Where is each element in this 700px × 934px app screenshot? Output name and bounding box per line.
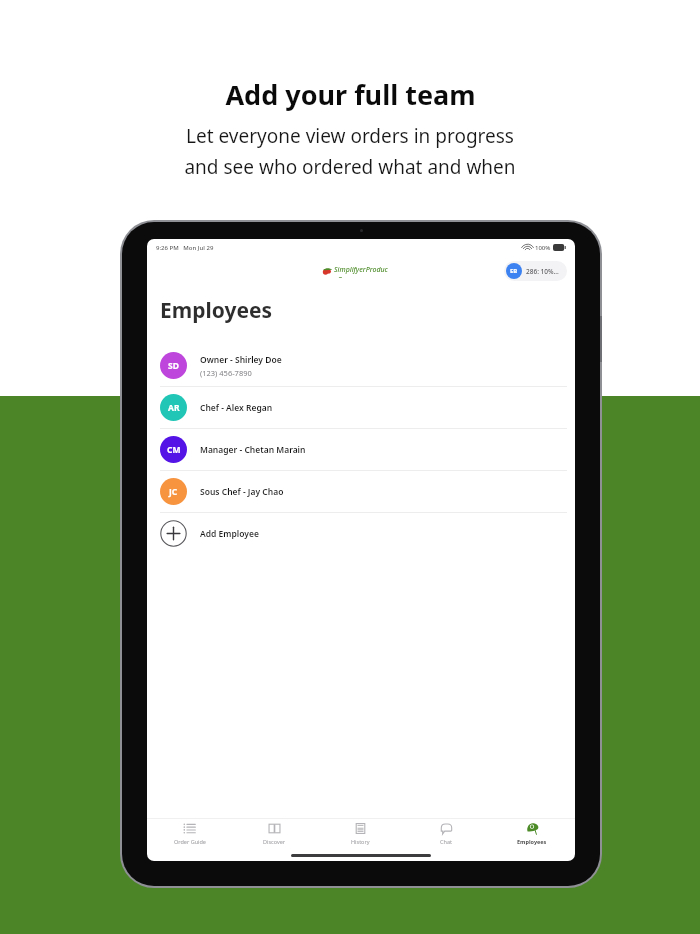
staticText: AR xyxy=(168,402,180,414)
button[interactable]: EB xyxy=(504,261,567,281)
staticText: (123) 456-7890 xyxy=(200,368,252,378)
staticText: 9:26 PM Mon Jul 29 xyxy=(156,244,214,252)
staticText: EB xyxy=(510,267,518,275)
staticText: Employees xyxy=(517,838,547,845)
staticText: Add Employee xyxy=(200,528,259,540)
staticText: SD xyxy=(168,360,179,372)
button[interactable]: History xyxy=(317,819,403,852)
button[interactable]: SD xyxy=(147,345,575,386)
button[interactable]: CM xyxy=(147,429,575,470)
button[interactable]: Order Guide xyxy=(147,819,232,852)
staticText: History xyxy=(351,838,370,845)
staticText: CM xyxy=(167,444,181,456)
other: Employees xyxy=(526,822,539,835)
staticText: Add your full team xyxy=(225,76,476,113)
button[interactable]: JC xyxy=(147,471,575,512)
button[interactable]: Chat xyxy=(403,819,489,852)
staticText: Let everyone view orders in progress xyxy=(186,123,514,149)
staticText: Employees xyxy=(160,296,273,325)
staticText: Chat xyxy=(440,838,452,845)
button[interactable]: AR xyxy=(147,387,575,428)
button[interactable]: Add Employee xyxy=(147,513,575,554)
staticText: Manager - Chetan Marain xyxy=(200,444,306,456)
staticText: 286: 10%... xyxy=(526,267,559,276)
staticText: Sous Chef - Jay Chao xyxy=(200,486,284,498)
staticText: Chef - Alex Regan xyxy=(200,402,273,414)
staticText: and see who ordered what and when xyxy=(184,154,516,180)
button[interactable]: Discover xyxy=(232,819,317,852)
staticText: SimplifyerProduceCo. xyxy=(334,265,388,278)
staticText: Owner - Shirley Doe xyxy=(200,354,282,366)
staticText: Discover xyxy=(263,838,286,845)
staticText: Order Guide xyxy=(174,838,206,845)
button[interactable]: Employees xyxy=(489,819,575,852)
staticText: 100% xyxy=(535,244,551,252)
staticText: JC xyxy=(169,486,178,498)
